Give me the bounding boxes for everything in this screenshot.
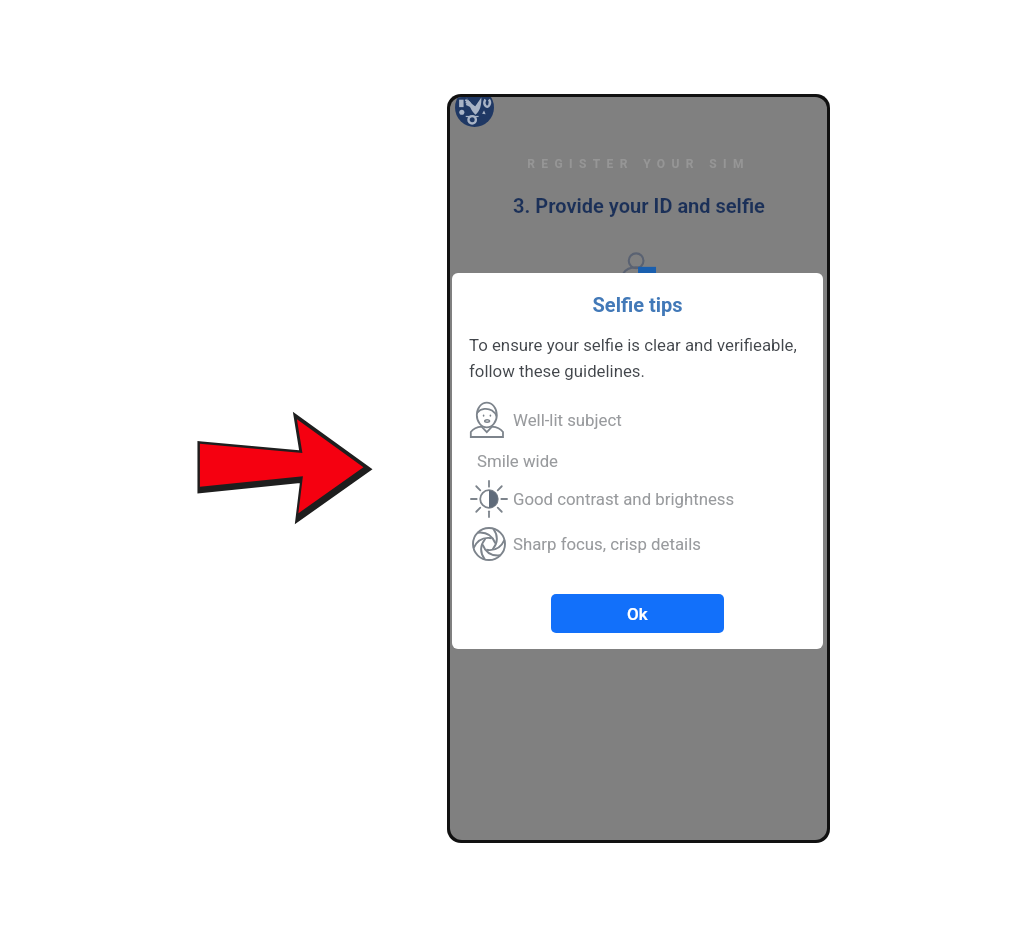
staticText: Selfie tips	[452, 293, 823, 316]
staticText: 3. Provide your ID and selfie	[513, 194, 765, 217]
staticText: To ensure your selfie is clear and verif…	[469, 335, 797, 381]
button[interactable]: Ok	[551, 594, 724, 633]
staticText: Good contrast and brightness	[513, 489, 735, 509]
button[interactable]: Logo	[455, 97, 494, 127]
other: Identity verification	[615, 251, 663, 287]
button[interactable]: Well-lit subject	[452, 400, 823, 440]
button[interactable]: Smile wide	[452, 441, 823, 481]
staticText: Ok	[627, 604, 648, 624]
staticText: Well-lit subject	[513, 410, 622, 430]
staticText: REGISTER YOUR SIM	[527, 157, 750, 171]
staticText: Sharp focus, crisp details	[513, 534, 701, 554]
button[interactable]: Sharp focus, crisp details	[452, 524, 823, 564]
staticText: Smile wide	[477, 451, 559, 471]
button[interactable]: Good contrast and brightness	[452, 479, 823, 519]
